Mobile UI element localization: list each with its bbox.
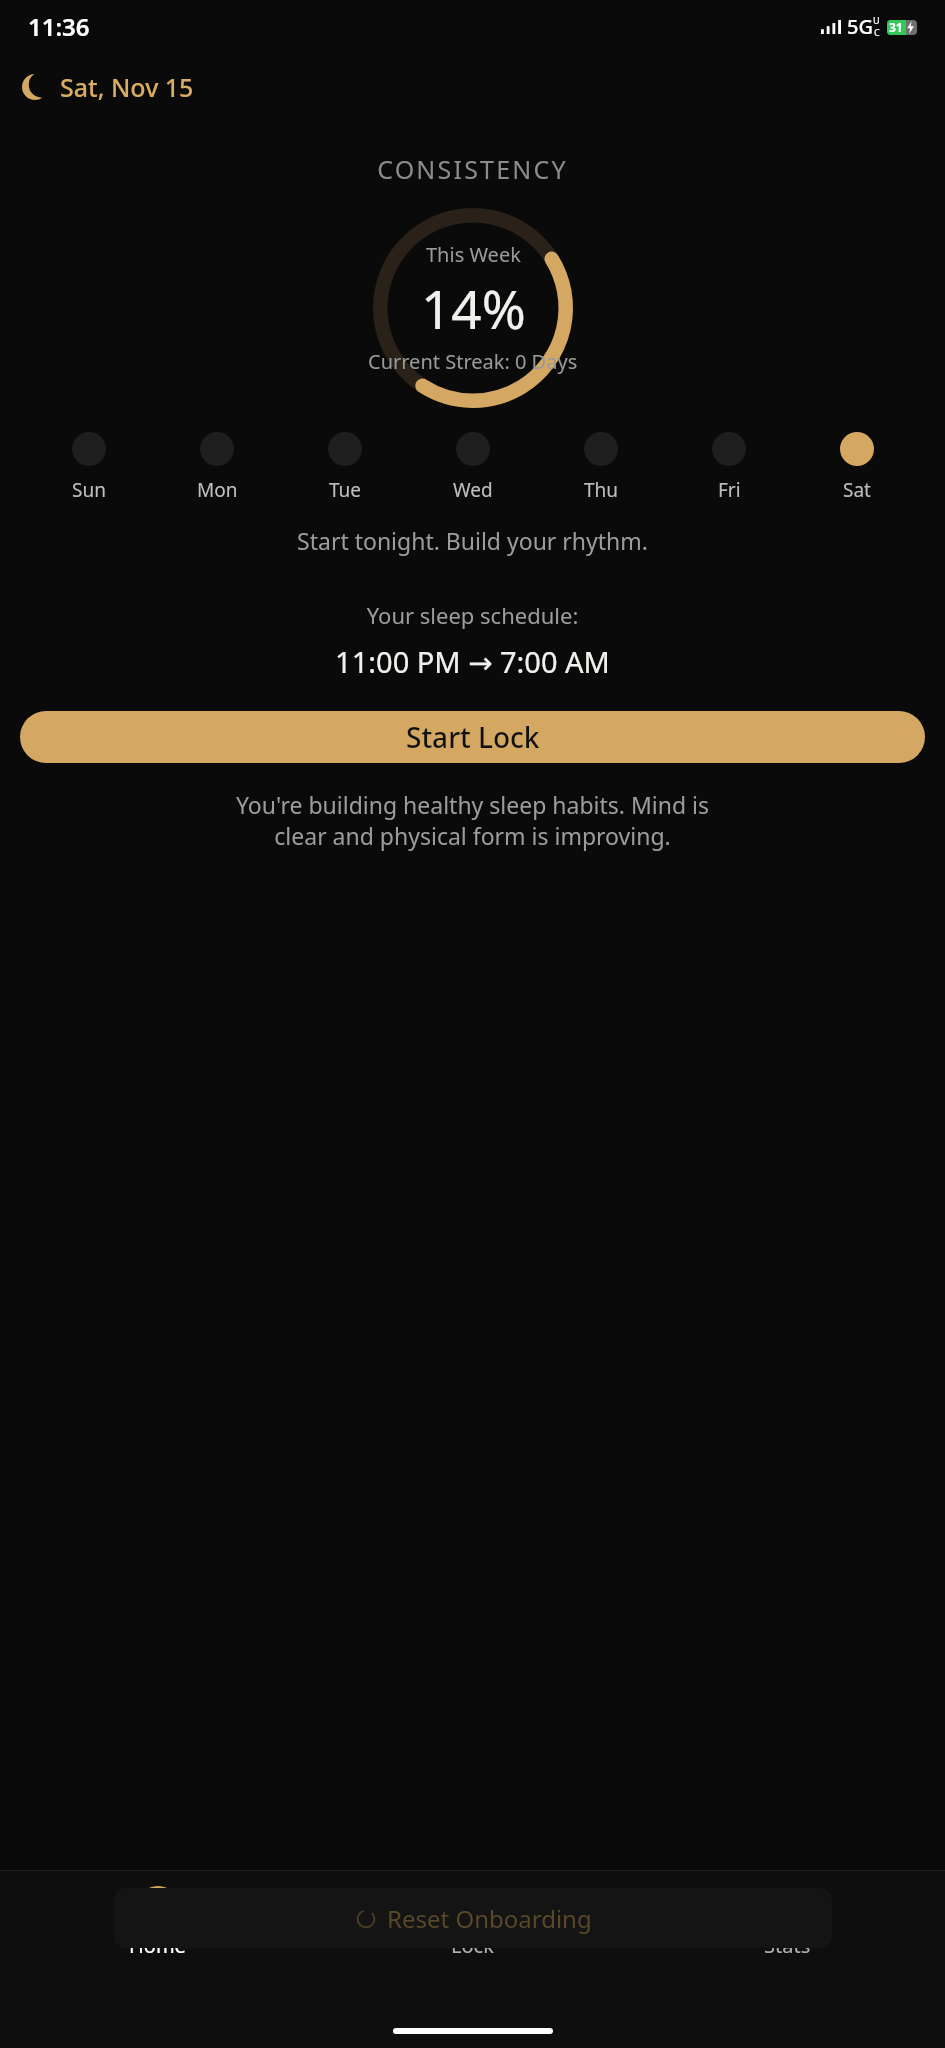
staticText: Start Lock (406, 718, 540, 756)
button[interactable]: Fri (665, 432, 793, 503)
button[interactable]: Tue (281, 432, 409, 503)
button[interactable]: Stats (630, 1882, 945, 1963)
staticText: Home (129, 1932, 186, 1959)
staticText: Mon (197, 477, 238, 503)
staticText: U (873, 14, 880, 26)
staticText: Fri (718, 477, 741, 503)
staticText: Sat, Nov 15 (60, 70, 194, 104)
staticText: Tue (329, 477, 362, 503)
staticText: 14% (421, 272, 526, 344)
staticText: Wed (453, 477, 493, 503)
staticText: 31 (889, 19, 903, 35)
button[interactable]: Wed (409, 432, 537, 503)
staticText: 5G (847, 13, 873, 40)
staticText: Stats (764, 1932, 811, 1959)
staticText: Reset Onboarding (387, 1902, 592, 1935)
staticText: This Week (426, 241, 521, 268)
staticText: You're building healthy sleep habits. Mi… (26, 789, 919, 852)
staticText: Sun (72, 477, 106, 503)
button[interactable]: Sun (24, 432, 153, 503)
staticText: C (874, 26, 880, 38)
staticText: Current Streak: 0 Days (368, 348, 578, 375)
staticText: Your sleep schedule: (0, 600, 945, 630)
button[interactable]: Home (0, 1882, 315, 1963)
staticText: Lock (451, 1932, 494, 1959)
staticText: 11:00 PM → 7:00 AM (0, 642, 945, 681)
button[interactable]: Lock (315, 1882, 630, 1963)
button[interactable]: Sat, Nov 15 (22, 70, 194, 104)
button[interactable]: Reset Onboarding (114, 1888, 832, 1948)
button[interactable]: Mon (153, 432, 281, 503)
staticText: Start tonight. Build your rhythm. (0, 525, 945, 556)
button[interactable]: Sat (793, 432, 921, 503)
staticText: CONSISTENCY (0, 152, 945, 186)
button[interactable]: Start Lock (20, 711, 925, 763)
staticText: Sat (843, 477, 871, 503)
staticText: Thu (584, 477, 619, 503)
staticText: 11:36 (28, 10, 90, 43)
button[interactable]: Thu (537, 432, 665, 503)
